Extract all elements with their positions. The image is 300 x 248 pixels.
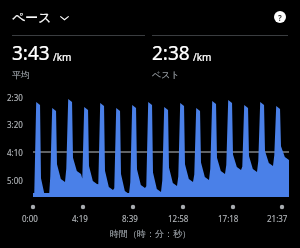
button[interactable]: 3:43	[12, 40, 152, 80]
staticText: /km	[193, 50, 212, 64]
staticText: 2:38	[152, 40, 190, 66]
staticText: 5:00	[7, 175, 23, 186]
staticText: /km	[53, 50, 72, 64]
staticText: ?	[278, 12, 282, 23]
button[interactable]: ペース	[11, 4, 71, 30]
staticText: 0:00	[22, 213, 38, 224]
staticText: 21:37	[267, 213, 288, 224]
staticText: 2:30	[7, 92, 23, 103]
button[interactable]: ヘルプ	[269, 6, 291, 28]
staticText: ペース	[12, 9, 52, 25]
staticText: 平均	[12, 69, 30, 80]
button[interactable]: 2:38	[152, 40, 292, 80]
staticText: 12:58	[168, 213, 189, 224]
staticText: 3:20	[7, 119, 23, 130]
staticText: 4:19	[72, 213, 88, 224]
staticText: ベスト	[152, 69, 180, 80]
staticText: 4:10	[7, 147, 23, 158]
staticText: 時間（時：分：秒）	[110, 228, 191, 239]
staticText: 17:18	[218, 213, 239, 224]
staticText: 3:43	[12, 40, 50, 66]
staticText: 8:39	[122, 213, 138, 224]
